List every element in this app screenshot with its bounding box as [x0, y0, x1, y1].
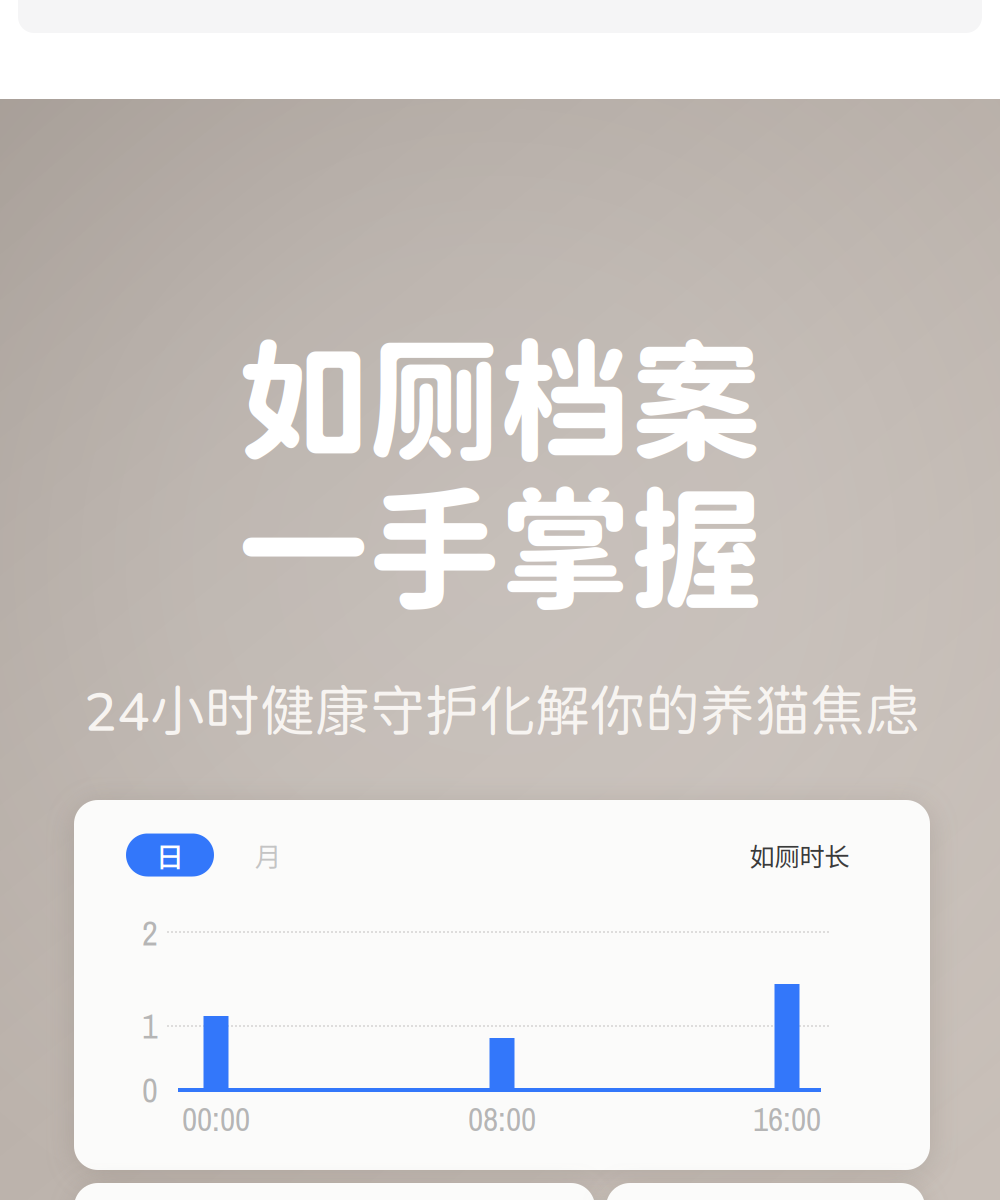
staticText: 08:00	[468, 1097, 536, 1141]
staticText: 如厕时长	[749, 837, 849, 873]
staticText: 16:00	[753, 1097, 821, 1141]
staticText: 0	[142, 1067, 158, 1113]
staticText: 24小时健康守护化解你的养猫焦虑	[84, 678, 920, 742]
staticText: 一手掌握	[238, 471, 762, 625]
button[interactable]: 月	[240, 833, 296, 877]
staticText: 1	[142, 1003, 158, 1049]
staticText: 月	[254, 836, 281, 874]
staticText: 00:00	[182, 1097, 250, 1141]
staticText: 日	[156, 835, 184, 875]
staticText: 2	[142, 910, 158, 956]
staticText: 如厕档案	[238, 323, 762, 477]
button[interactable]: 日	[126, 833, 214, 876]
